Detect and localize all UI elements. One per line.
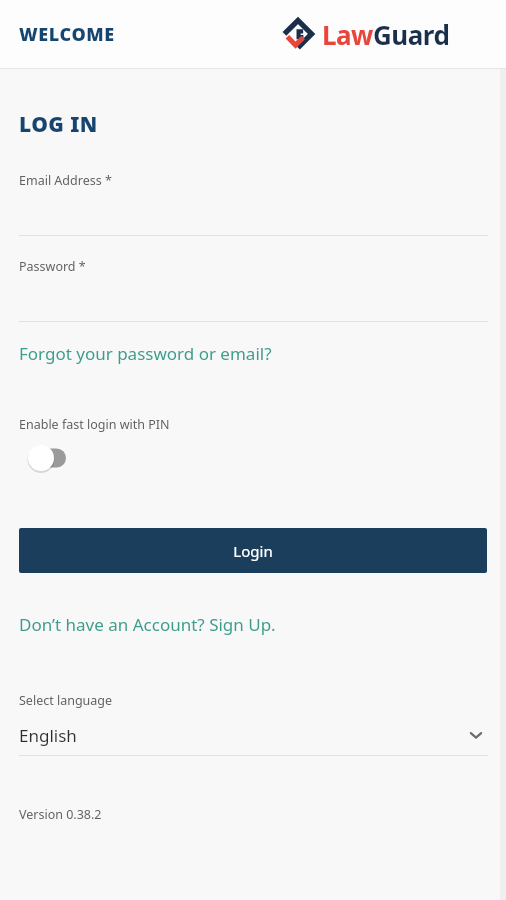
staticText: WELCOME [19,22,115,47]
staticText: Password * [19,258,86,275]
staticText: Forgot your password or email? [19,342,272,365]
staticText: Guard [373,17,450,52]
button[interactable]: Login [19,528,487,573]
staticText: Law [322,17,373,52]
staticText: Login [233,541,273,561]
staticText: English [19,724,77,747]
staticText: Email Address * [19,172,112,189]
staticText: Version 0.38.2 [19,806,102,823]
button[interactable]: Enable fast login with PIN [17,441,73,475]
button[interactable]: Forgot your password or email? [19,342,272,365]
staticText: Select language [19,692,113,709]
staticText: Don’t have an Account? Sign Up. [19,613,276,636]
staticText: Enable fast login with PIN [19,416,170,433]
staticText: LOG IN [19,110,98,139]
button[interactable]: English [19,714,488,756]
button[interactable]: Don’t have an Account? Sign Up. [19,613,276,636]
